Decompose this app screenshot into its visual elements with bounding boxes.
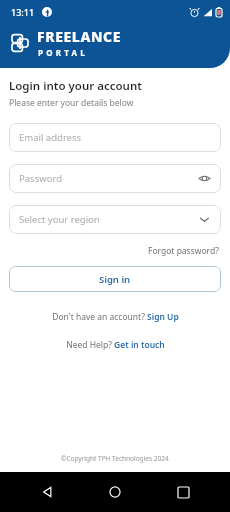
button[interactable]: Sign in bbox=[9, 266, 221, 292]
staticText: FREELANCE bbox=[37, 27, 122, 46]
staticText: Sign in bbox=[99, 273, 131, 286]
staticText: Need Help? Get in touch bbox=[66, 339, 165, 351]
staticText: ©Copyright TPH Technologies 2024 bbox=[61, 454, 169, 463]
staticText: PORTAL bbox=[38, 47, 88, 58]
staticText: 13:11 bbox=[11, 6, 35, 18]
button[interactable]: Back bbox=[34, 479, 60, 505]
staticText: Select your region bbox=[19, 213, 100, 226]
other: Open region list bbox=[198, 213, 211, 226]
staticText: Login into your account bbox=[9, 78, 142, 94]
button[interactable]: Select your region bbox=[9, 205, 221, 234]
button[interactable]: Need Help? Get in touch bbox=[64, 337, 167, 353]
staticText: Don't have an account? Sign Up bbox=[52, 311, 179, 323]
staticText: Email address bbox=[19, 131, 82, 144]
other: Show password bbox=[198, 172, 211, 185]
button[interactable]: Recent apps bbox=[170, 479, 196, 505]
button[interactable]: Email address bbox=[9, 123, 221, 152]
staticText: Forgot password? bbox=[148, 245, 219, 257]
staticText: Please enter your details below bbox=[9, 97, 134, 109]
staticText: Password bbox=[19, 172, 62, 185]
button[interactable]: Password bbox=[9, 164, 221, 193]
button[interactable]: Don't have an account? Sign Up bbox=[50, 309, 181, 325]
button[interactable]: Home bbox=[102, 479, 128, 505]
button[interactable]: Forgot password? bbox=[146, 243, 221, 259]
